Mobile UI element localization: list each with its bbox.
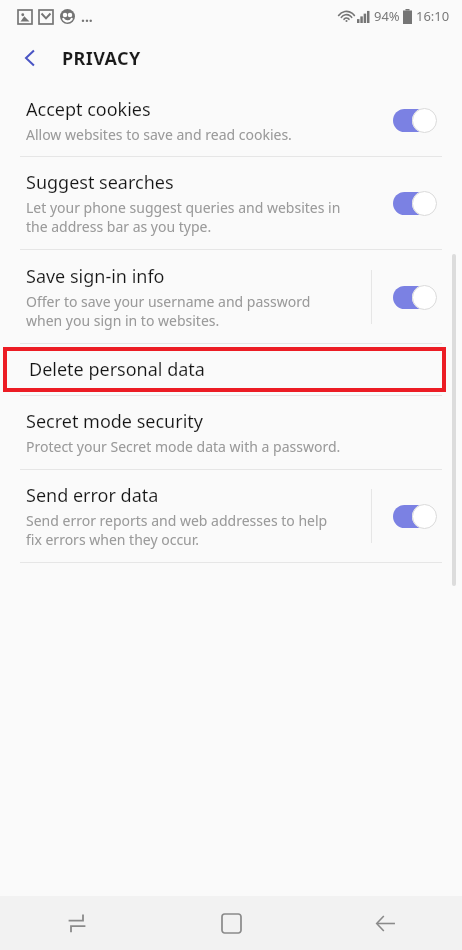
button[interactable]: Toggle Save sign-in info: [390, 280, 440, 314]
staticText: 16:10: [416, 7, 450, 25]
staticText: Send error data: [26, 483, 159, 508]
staticText: Suggest searches: [26, 170, 174, 195]
button[interactable]: Delete personal data: [7, 351, 442, 388]
button[interactable]: Home: [154, 896, 308, 950]
button[interactable]: Recents: [0, 896, 154, 950]
staticText: Protect your Secret mode data with a pas…: [26, 437, 341, 456]
staticText: Delete personal data: [29, 357, 205, 382]
button[interactable]: Toggle Accept cookies: [390, 103, 440, 137]
staticText: 94%: [374, 7, 400, 25]
staticText: Allow websites to save and read cookies.: [26, 125, 292, 144]
button[interactable]: Accept cookies: [0, 84, 462, 156]
staticText: ...: [81, 7, 93, 26]
staticText: Accept cookies: [26, 97, 151, 122]
button[interactable]: Back: [308, 896, 462, 950]
button[interactable]: Save sign-in info: [0, 250, 462, 343]
staticText: Secret mode security: [26, 409, 203, 434]
staticText: PRIVACY: [62, 46, 141, 71]
staticText: Send error reports and web addresses to …: [26, 511, 328, 549]
button[interactable]: Secret mode security: [0, 396, 462, 469]
button[interactable]: Toggle Suggest searches: [390, 186, 440, 220]
button[interactable]: Send error data: [0, 470, 462, 562]
staticText: Offer to save your username and password…: [26, 292, 311, 330]
button[interactable]: Toggle Send error data: [390, 499, 440, 533]
button[interactable]: Back: [10, 38, 50, 78]
staticText: Let your phone suggest queries and websi…: [26, 198, 341, 236]
staticText: Save sign-in info: [26, 264, 165, 289]
button[interactable]: Suggest searches: [0, 157, 462, 249]
